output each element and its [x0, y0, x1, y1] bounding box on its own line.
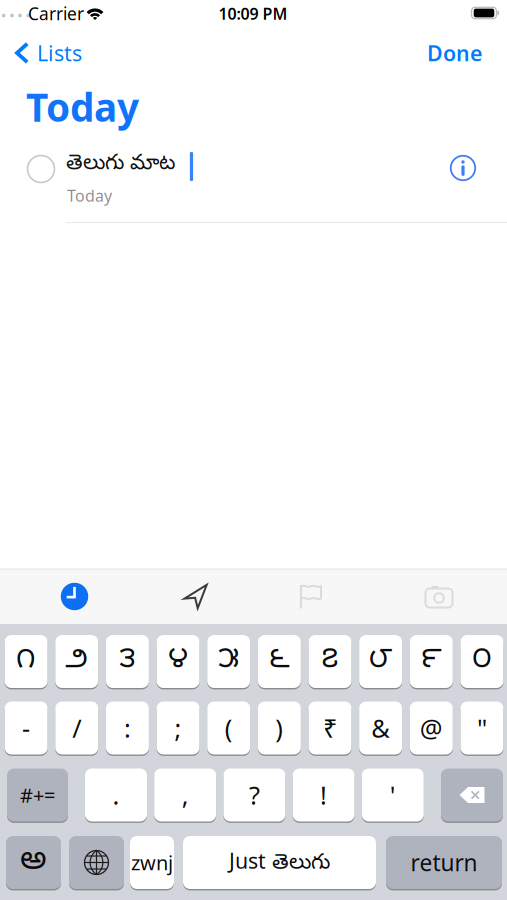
button[interactable]: Lists: [15, 39, 82, 67]
button[interactable]: ౬: [258, 635, 301, 688]
staticText: (: [225, 711, 233, 745]
staticText: .: [112, 778, 119, 812]
button[interactable]: ?: [223, 768, 285, 821]
staticText: ౦: [472, 642, 492, 681]
button[interactable]: ౪: [156, 635, 199, 688]
staticText: Done: [427, 39, 482, 67]
staticText: Carrier: [28, 2, 84, 25]
staticText: Just తెలుగు: [229, 846, 330, 879]
staticText: /: [72, 711, 81, 745]
staticText: @: [420, 711, 443, 745]
staticText: అ: [20, 840, 47, 884]
staticText: ': [390, 778, 396, 812]
staticText: !: [320, 778, 327, 812]
button[interactable]: .: [85, 768, 147, 821]
button[interactable]: Complete reminder: [27, 155, 54, 182]
button[interactable]: :: [106, 701, 149, 754]
button[interactable]: &: [359, 701, 402, 754]
staticText: -: [22, 711, 30, 745]
button[interactable]: ౩: [106, 635, 149, 688]
button[interactable]: ,: [154, 768, 216, 821]
staticText: #+=: [20, 782, 55, 808]
button[interactable]: /: [55, 701, 98, 754]
button[interactable]: Flag: [299, 583, 325, 609]
button[interactable]: Delete: [441, 768, 503, 821]
button[interactable]: ౧: [5, 635, 48, 688]
staticText: ౯: [421, 642, 441, 681]
button[interactable]: Details: [451, 156, 475, 180]
button[interactable]: Add photo: [425, 587, 452, 606]
staticText: ౫: [218, 642, 239, 681]
staticText: 10:09 PM: [218, 3, 287, 24]
button[interactable]: @: [410, 701, 453, 754]
button[interactable]: ): [258, 701, 301, 754]
button[interactable]: (: [207, 701, 250, 754]
button[interactable]: ;: [156, 701, 199, 754]
button[interactable]: return: [386, 836, 502, 889]
staticText: తెలుగు మాట: [66, 151, 175, 179]
button[interactable]: Next keyboard: [69, 836, 124, 889]
button[interactable]: ౮: [359, 635, 402, 688]
button[interactable]: ₹: [308, 701, 351, 754]
button[interactable]: Remind me on a day: [60, 582, 88, 610]
button[interactable]: ౫: [207, 635, 250, 688]
staticText: return: [410, 847, 477, 877]
button[interactable]: ': [362, 768, 424, 821]
staticText: Today: [67, 185, 112, 206]
button[interactable]: -: [5, 701, 48, 754]
staticText: ౮: [369, 642, 393, 681]
staticText: ;: [174, 711, 181, 745]
staticText: Today: [26, 81, 139, 132]
staticText: ): [275, 711, 283, 745]
button[interactable]: అ: [6, 836, 61, 889]
button[interactable]: ౨: [55, 635, 98, 688]
button[interactable]: Done: [0, 39, 482, 67]
button[interactable]: ౯: [410, 635, 453, 688]
staticText: ౭: [321, 642, 338, 681]
button[interactable]: zwnj: [130, 836, 174, 889]
button[interactable]: #+=: [7, 768, 68, 821]
button[interactable]: ": [460, 701, 503, 754]
staticText: ,: [182, 778, 189, 812]
staticText: ౨: [65, 642, 88, 681]
staticText: ౧: [16, 642, 36, 681]
button[interactable]: Remind me at a location: [182, 583, 209, 610]
button[interactable]: ౦: [460, 635, 503, 688]
staticText: &: [371, 711, 390, 745]
staticText: ౪: [168, 642, 188, 681]
button[interactable]: Just తెలుగు: [183, 836, 376, 889]
staticText: zwnj: [131, 849, 173, 876]
staticText: Lists: [37, 39, 82, 67]
staticText: ౬: [269, 642, 289, 681]
staticText: ": [477, 711, 487, 745]
button[interactable]: !: [293, 768, 355, 821]
staticText: ౩: [119, 642, 135, 681]
staticText: :: [124, 711, 131, 745]
button[interactable]: ౭: [308, 635, 351, 688]
staticText: ₹: [323, 711, 337, 745]
staticText: ?: [249, 778, 260, 812]
